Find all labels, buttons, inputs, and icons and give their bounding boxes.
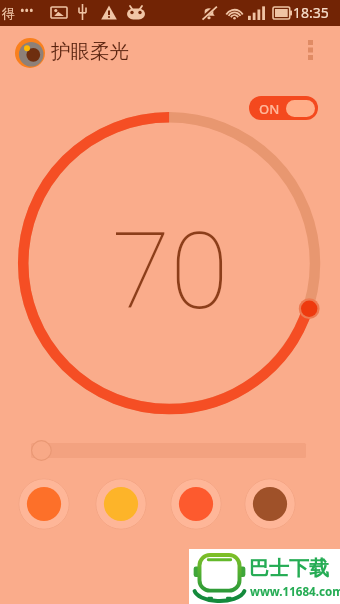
button[interactable]: Colour option	[17, 477, 71, 531]
staticText: 18:35	[293, 3, 329, 22]
button[interactable]: More options	[295, 32, 325, 68]
staticText: ON	[259, 100, 280, 118]
button[interactable]: Toggle night light	[249, 96, 318, 120]
staticText: 巴士下载	[249, 556, 329, 581]
staticText: 70	[112, 209, 229, 334]
staticText: 得	[2, 5, 15, 21]
button[interactable]: Colour option	[243, 477, 297, 531]
button[interactable]: Colour option	[94, 477, 148, 531]
staticText: •••	[20, 2, 34, 18]
staticText: 护眼柔光	[51, 39, 129, 64]
staticText: www.11684.com	[250, 584, 340, 600]
button[interactable]: Colour option	[169, 477, 223, 531]
